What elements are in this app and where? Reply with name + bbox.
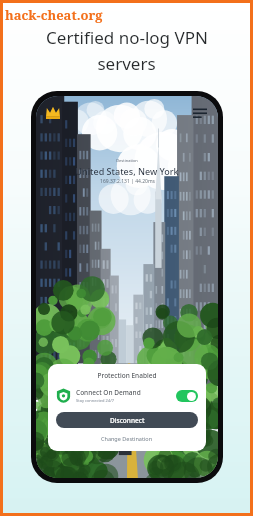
staticText: Protection Enabled — [56, 371, 198, 380]
staticText: hack-cheat.org — [5, 6, 103, 24]
staticText: Disconnect — [110, 416, 145, 425]
staticText: servers — [97, 52, 156, 75]
staticText: Destination — [116, 158, 138, 163]
staticText: Stay connected 24/7 — [76, 398, 114, 403]
staticText: Connect On Demand — [76, 388, 141, 397]
staticText: United States, New York — [75, 165, 179, 177]
staticText: Certified no-log VPN — [46, 26, 208, 49]
button[interactable]: Disconnect — [56, 412, 198, 428]
button[interactable]: Menu — [189, 102, 211, 124]
button[interactable]: Connect On Demand — [56, 388, 198, 403]
staticText: 169.37.2.131 | 44.20ms — [100, 178, 155, 185]
staticText: Change Destination — [101, 435, 153, 442]
button[interactable]: Change Destination — [56, 435, 198, 442]
button[interactable]: Premium — [43, 102, 63, 122]
button[interactable]: Connect On Demand toggle — [176, 390, 198, 402]
